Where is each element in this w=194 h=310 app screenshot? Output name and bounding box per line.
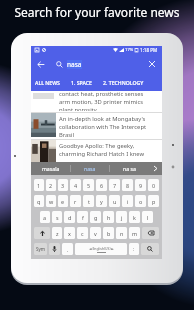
button[interactable]: f <box>77 211 88 223</box>
button[interactable]: Clear search <box>146 58 158 70</box>
staticText: 2. TECHNOLOGY <box>103 79 144 86</box>
button[interactable]: : <box>129 243 139 255</box>
staticText: a <box>43 214 47 221</box>
button[interactable]: More suggestions <box>148 162 162 175</box>
button[interactable]: d <box>64 211 75 223</box>
button[interactable]: Back <box>35 58 47 70</box>
staticText: o <box>139 198 143 205</box>
button[interactable]: masala <box>31 162 70 175</box>
staticText: na sa <box>123 165 136 172</box>
button[interactable]: g <box>90 211 101 223</box>
button[interactable]: 5 <box>83 179 94 191</box>
staticText: contact heat, prosthetic senses <box>59 90 144 98</box>
button[interactable]: na sa <box>110 162 148 175</box>
button[interactable]: r <box>70 195 81 207</box>
staticText: Sym <box>36 246 46 252</box>
button[interactable]: k <box>129 211 140 223</box>
staticText: g <box>94 214 98 221</box>
staticText: : <box>133 246 135 252</box>
staticText: 5 <box>87 182 91 189</box>
staticText: 1. SPACE <box>71 79 92 86</box>
button[interactable]: o <box>135 195 146 207</box>
button[interactable]: 4 <box>70 179 81 191</box>
staticText: r <box>74 198 77 205</box>
staticText: b <box>107 230 111 237</box>
staticText: ALL NEWS <box>35 79 60 86</box>
staticText: s <box>56 214 59 221</box>
button[interactable]: 1 <box>34 179 44 191</box>
button[interactable]: l <box>142 211 153 223</box>
staticText: arm motion, 3D printer mimics <box>59 98 143 106</box>
button[interactable]: . <box>62 243 73 255</box>
button[interactable]: Space <box>75 243 127 255</box>
button[interactable]: x <box>64 227 75 239</box>
staticText: An in-depth look at Mongabay's <box>59 115 146 123</box>
button[interactable]: y <box>96 195 107 207</box>
button[interactable]: j <box>116 211 127 223</box>
staticText: ◄ English(US) ► <box>89 246 114 251</box>
staticText: x <box>68 230 71 237</box>
button[interactable]: z <box>52 227 62 239</box>
button[interactable]: i <box>122 195 133 207</box>
staticText: nasa <box>67 60 82 69</box>
staticText: t <box>88 198 90 205</box>
staticText: 0 <box>152 182 156 189</box>
staticText: c <box>81 230 84 237</box>
button[interactable]: 8 <box>122 179 133 191</box>
button[interactable]: 0 <box>148 179 159 191</box>
staticText: k <box>133 214 136 221</box>
staticText: f <box>82 214 84 221</box>
staticText: 9 <box>139 182 143 189</box>
staticText: u <box>113 198 117 205</box>
button[interactable]: 9 <box>135 179 146 191</box>
staticText: v <box>94 230 97 237</box>
button[interactable]: c <box>77 227 88 239</box>
button[interactable]: 3 <box>58 179 68 191</box>
staticText: w <box>49 198 54 205</box>
button[interactable]: n <box>116 227 127 239</box>
button[interactable]: b <box>103 227 114 239</box>
staticText: e <box>61 198 65 205</box>
button[interactable]: t <box>83 195 94 207</box>
button[interactable]: 6 <box>96 179 107 191</box>
staticText: 6 <box>100 182 104 189</box>
button[interactable]: v <box>90 227 101 239</box>
button[interactable]: a <box>40 211 50 223</box>
button[interactable]: q <box>34 195 44 207</box>
button[interactable]: Search <box>141 243 159 255</box>
button[interactable]: m <box>129 227 140 239</box>
button[interactable]: Backspace <box>142 227 159 239</box>
staticText: q <box>37 198 41 205</box>
staticText: j <box>121 214 123 221</box>
button[interactable]: 1. SPACE <box>69 74 94 91</box>
staticText: 17% <box>125 47 134 53</box>
staticText: plant porosity <box>59 106 97 111</box>
staticText: z <box>56 230 59 237</box>
button[interactable]: s <box>52 211 62 223</box>
button[interactable]: 7 <box>109 179 120 191</box>
staticText: . <box>67 246 69 253</box>
button[interactable]: contact heat, prosthetic senses <box>31 91 162 112</box>
staticText: 1:18 PM <box>140 47 158 53</box>
button[interactable]: u <box>109 195 120 207</box>
button[interactable]: Sym <box>34 243 47 255</box>
button[interactable]: An in-depth look at Mongabay's <box>31 113 162 139</box>
button[interactable]: h <box>103 211 114 223</box>
button[interactable]: w <box>46 195 56 207</box>
staticText: Goodbye Apollo: The geeky, <box>59 142 135 150</box>
staticText: p <box>152 198 156 205</box>
staticText: 7 <box>113 182 117 189</box>
button[interactable]: Shift <box>34 227 50 239</box>
button[interactable]: nasa <box>71 162 109 175</box>
button[interactable]: 2 <box>46 179 56 191</box>
button[interactable]: ALL NEWS <box>33 74 62 91</box>
button[interactable]: p <box>148 195 159 207</box>
staticText: y <box>100 198 103 205</box>
button[interactable]: 2. TECHNOLOGY <box>101 74 146 91</box>
staticText: nasa <box>84 165 96 172</box>
button[interactable]: e <box>58 195 68 207</box>
button[interactable]: Voice input <box>49 243 60 255</box>
button[interactable]: Goodbye Apollo: The geeky, <box>31 140 162 162</box>
staticText: m <box>132 230 138 237</box>
staticText: charming Richard Hatch I knew <box>59 150 145 158</box>
